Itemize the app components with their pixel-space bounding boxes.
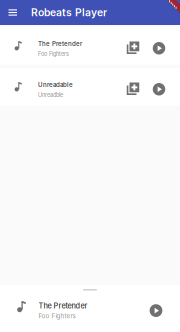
button[interactable]: Play <box>146 24 172 67</box>
staticText: The Pretender <box>38 40 82 47</box>
staticText: Foo Fighters <box>38 312 75 320</box>
staticText: Unreadable <box>38 81 73 88</box>
button[interactable]: Play <box>143 298 169 324</box>
staticText: The Pretender <box>38 301 87 310</box>
button[interactable]: The Pretender <box>0 27 180 64</box>
button[interactable]: Unreadable <box>0 68 180 105</box>
button[interactable]: Play <box>146 65 172 108</box>
staticText: Robeats Player <box>31 6 107 19</box>
button[interactable]: Add to queue <box>120 25 146 66</box>
button[interactable]: Menu <box>0 0 23 25</box>
button[interactable]: Add to queue <box>120 66 146 107</box>
staticText: Foo Fighters <box>38 51 69 57</box>
staticText: Unreadble <box>38 92 63 98</box>
